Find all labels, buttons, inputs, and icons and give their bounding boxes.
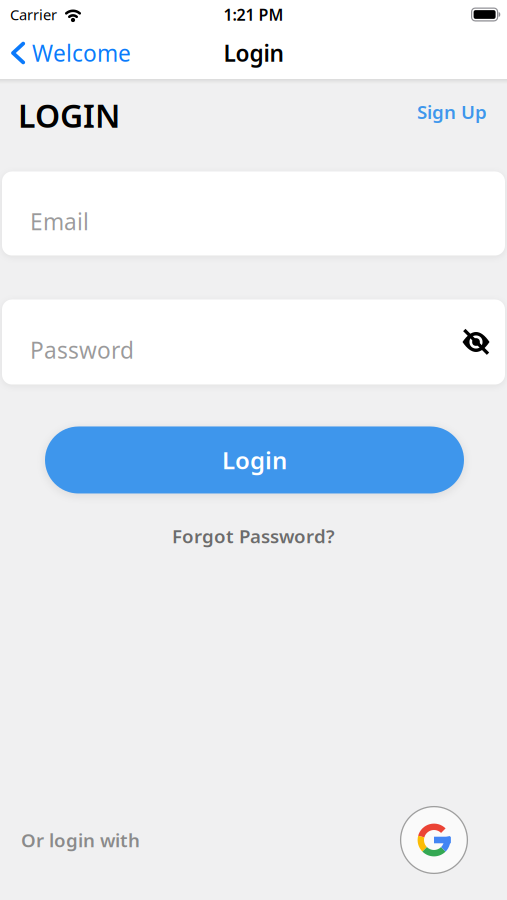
- button[interactable]: Password: [0, 299, 507, 384]
- staticText: Login: [223, 38, 283, 68]
- staticText: Or login with: [21, 828, 140, 852]
- staticText: Password: [30, 335, 134, 365]
- button[interactable]: Show password: [462, 329, 490, 355]
- button[interactable]: Back: [0, 38, 131, 68]
- staticText: Login: [222, 444, 287, 476]
- staticText: Carrier: [10, 5, 57, 24]
- staticText: LOGIN: [18, 94, 120, 136]
- button[interactable]: Email: [0, 171, 507, 255]
- staticText: 1:21 PM: [223, 4, 283, 25]
- staticText: Welcome: [32, 38, 131, 68]
- button[interactable]: Sign Up: [417, 99, 487, 124]
- staticText: Forgot Password?: [172, 523, 335, 548]
- button[interactable]: Forgot Password?: [172, 523, 335, 548]
- button[interactable]: Login with Google: [400, 806, 468, 874]
- staticText: Email: [30, 206, 89, 236]
- button[interactable]: Login: [0, 426, 507, 493]
- staticText: Sign Up: [417, 99, 487, 124]
